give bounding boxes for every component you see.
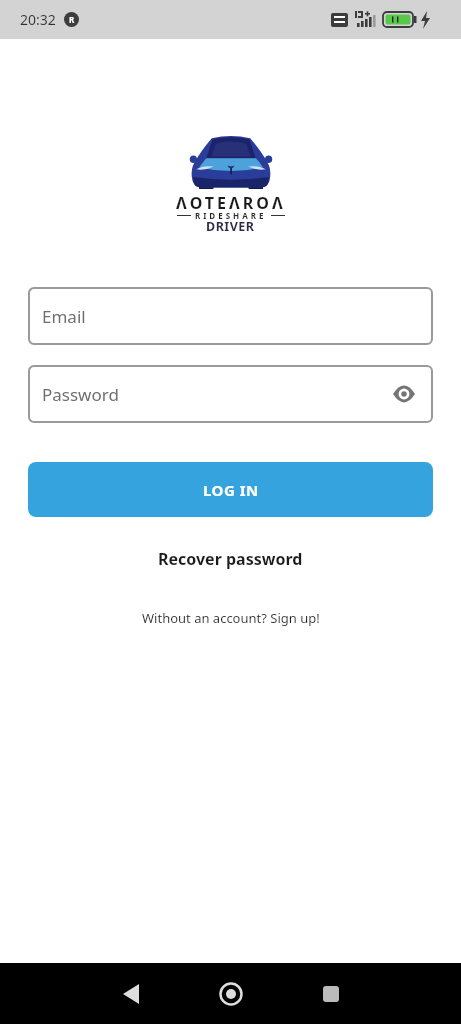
button[interactable]: Password [28,365,433,423]
staticText: Email [42,305,86,328]
button[interactable] [211,974,251,1014]
staticText: ΛOTEΛROΛ [176,192,286,212]
staticText: R [69,14,75,25]
button[interactable] [111,974,151,1014]
staticText: DRIVER [206,218,255,232]
staticText: Recover password [158,548,303,570]
button[interactable] [311,974,351,1014]
staticText: 20:32 [20,10,56,29]
staticText: LOG IN [203,480,259,500]
button[interactable]: LOG IN [28,462,433,517]
staticText: Without an account? Sign up! [142,609,320,627]
button[interactable]: Without an account? Sign up! [0,608,461,628]
staticText: RIDESHARE [195,210,267,221]
button[interactable]: Recover password [0,548,461,570]
button[interactable]: Email [28,287,433,345]
staticText: Password [42,383,119,406]
